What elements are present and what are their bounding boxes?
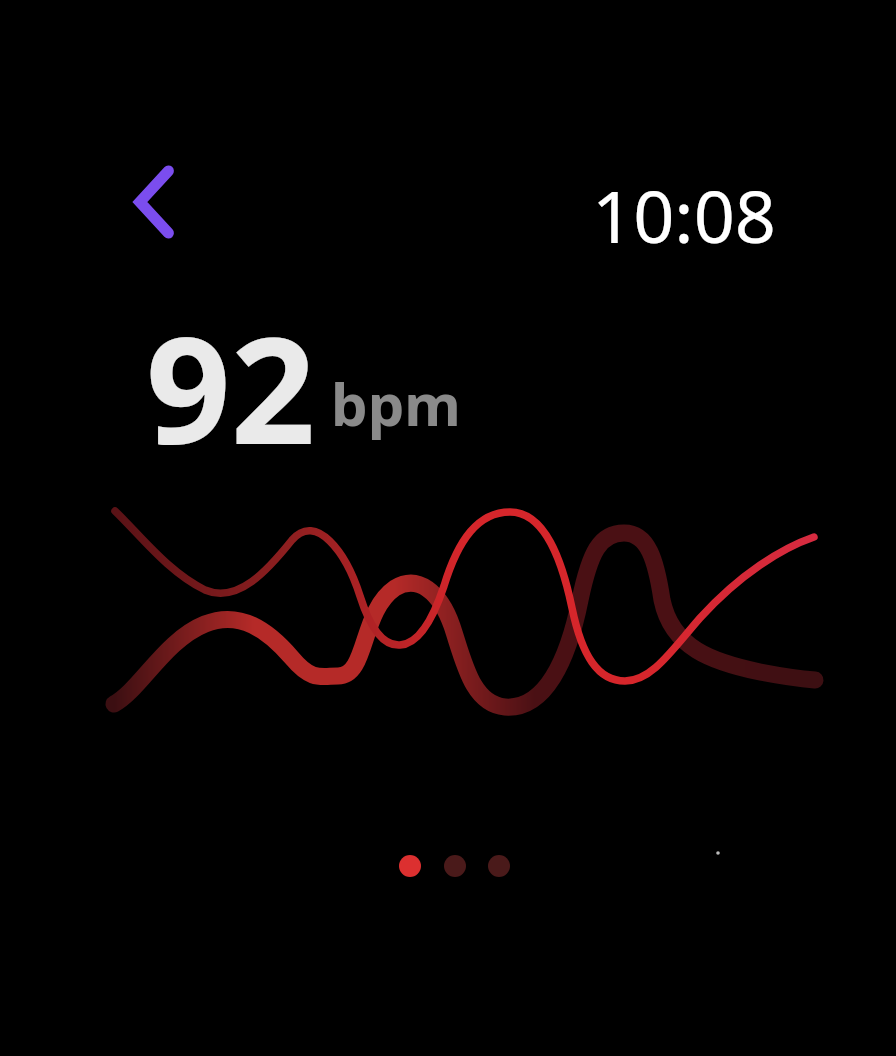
staticText: 92: [146, 286, 316, 488]
staticText: 10:08: [592, 166, 777, 264]
button[interactable]: Back: [118, 160, 202, 244]
button[interactable]: Page indicator: [388, 844, 520, 888]
staticText: bpm: [331, 364, 461, 443]
